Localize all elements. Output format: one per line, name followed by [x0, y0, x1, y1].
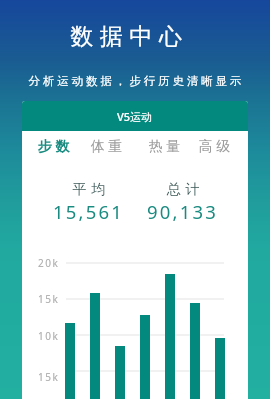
- staticText: 15k: [38, 370, 60, 384]
- staticText: 15k: [38, 292, 60, 306]
- button[interactable]: 高级: [188, 131, 240, 162]
- staticText: V5运动: [117, 109, 153, 124]
- staticText: 90,133: [147, 199, 219, 224]
- staticText: 总计: [164, 181, 202, 199]
- staticText: 高级: [197, 138, 232, 156]
- staticText: 15,561: [53, 199, 125, 224]
- button[interactable]: V5运动: [22, 101, 248, 131]
- staticText: 数据中心: [67, 22, 185, 51]
- button[interactable]: 热量: [138, 131, 190, 162]
- staticText: 20k: [38, 256, 60, 270]
- button[interactable]: 体重: [80, 131, 132, 162]
- staticText: 10k: [38, 329, 60, 343]
- staticText: 步数: [36, 138, 71, 156]
- staticText: 体重: [89, 138, 124, 156]
- staticText: 分析运动数据，步行历史清晰显示: [27, 74, 243, 88]
- staticText: 平均: [70, 181, 108, 199]
- button[interactable]: 步数: [27, 131, 79, 162]
- staticText: 热量: [147, 138, 182, 156]
